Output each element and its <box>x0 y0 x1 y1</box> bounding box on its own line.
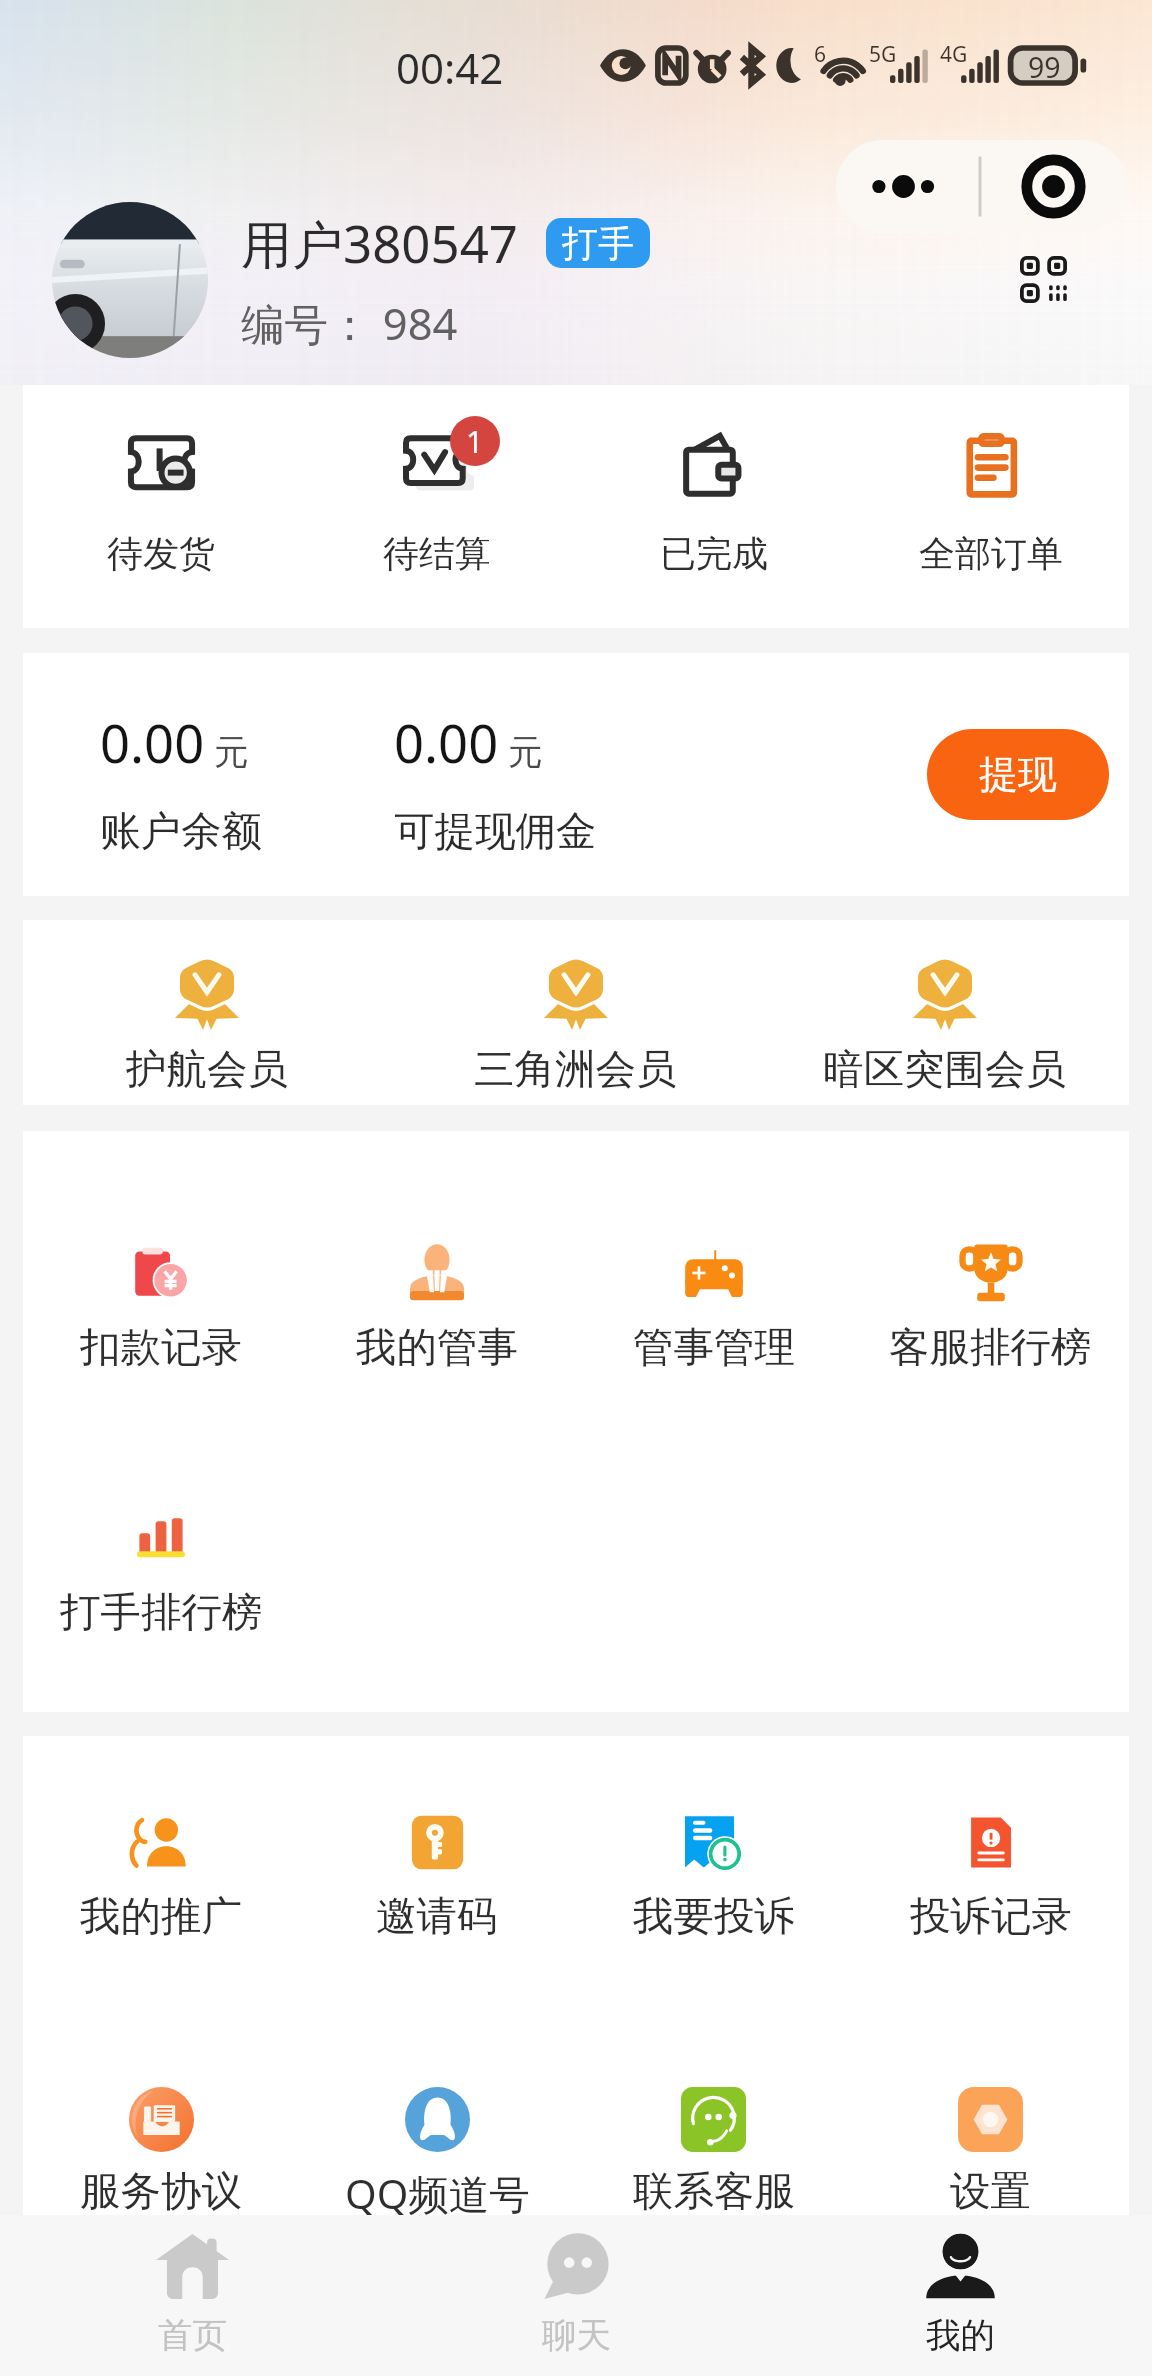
button[interactable]: 全部订单 <box>852 432 1129 576</box>
staticText: 元 <box>508 731 543 774</box>
staticText: 管事管理 <box>633 1322 795 1373</box>
button[interactable]: 打手排行榜 <box>23 1508 299 1638</box>
staticText: 0.00 <box>394 707 499 779</box>
staticText: 用户380547 <box>241 208 519 278</box>
staticText: 首页 <box>158 2314 227 2357</box>
button[interactable]: QQ频道号 <box>299 2087 575 2215</box>
staticText: 聊天 <box>542 2314 611 2357</box>
button[interactable]: 已完成 <box>575 432 852 576</box>
button[interactable]: 投诉记录 <box>852 1814 1129 1942</box>
staticText: 我要投诉 <box>633 1891 795 1942</box>
staticText: 提现 <box>979 750 1057 799</box>
button[interactable]: 服务协议 <box>23 2087 299 2215</box>
button[interactable]: 我的推广 <box>23 1814 299 1942</box>
button[interactable]: 我的 <box>768 2215 1152 2376</box>
button[interactable]: Scan QR code <box>1020 256 1067 303</box>
button[interactable]: More options <box>836 140 1127 233</box>
button[interactable]: 设置 <box>852 2087 1129 2215</box>
staticText: 打手排行榜 <box>60 1587 263 1638</box>
button[interactable]: 提现 <box>927 729 1109 820</box>
staticText: 编号： 984 <box>241 293 458 352</box>
staticText: 待结算 <box>383 531 491 576</box>
button[interactable]: 管事管理 <box>575 1243 852 1373</box>
staticText: 0.00 <box>100 707 205 779</box>
staticText: 5G <box>869 40 897 69</box>
button[interactable]: 联系客服 <box>575 2087 852 2215</box>
staticText: 6 <box>814 40 827 69</box>
staticText: 账户余额 <box>100 806 262 857</box>
button[interactable]: 我的管事 <box>299 1243 575 1373</box>
staticText: 元 <box>214 731 249 774</box>
button[interactable]: 我要投诉 <box>575 1814 852 1942</box>
staticText: 服务协议 <box>80 2166 242 2215</box>
staticText: 护航会员 <box>126 1044 288 1095</box>
staticText: 设置 <box>950 2166 1031 2215</box>
staticText: 全部订单 <box>919 531 1063 576</box>
button[interactable]: 邀请码 <box>299 1814 575 1942</box>
button[interactable]: 暗区突围会员 <box>760 958 1129 1095</box>
staticText: 投诉记录 <box>910 1891 1072 1942</box>
staticText: 扣款记录 <box>80 1322 242 1373</box>
staticText: 1 <box>466 421 484 462</box>
staticText: 我的推广 <box>80 1891 242 1942</box>
staticText: 打手 <box>562 221 634 266</box>
button[interactable]: 护航会员 <box>23 958 391 1095</box>
staticText: 暗区突围会员 <box>823 1044 1066 1095</box>
button[interactable]: 打手 <box>546 218 650 268</box>
staticText: 联系客服 <box>633 2166 795 2215</box>
staticText: 我的管事 <box>356 1322 518 1373</box>
button[interactable]: 1 <box>299 432 575 576</box>
staticText: 已完成 <box>660 531 768 576</box>
button[interactable]: 扣款记录 <box>23 1243 299 1373</box>
staticText: 99 <box>1028 48 1061 87</box>
staticText: 客服排行榜 <box>889 1322 1092 1373</box>
staticText: 我的 <box>926 2314 995 2357</box>
staticText: 4G <box>940 40 968 69</box>
staticText: 00:42 <box>396 39 504 96</box>
staticText: 邀请码 <box>376 1891 498 1942</box>
staticText: 三角洲会员 <box>474 1044 677 1095</box>
button[interactable]: 三角洲会员 <box>391 958 760 1095</box>
staticText: QQ频道号 <box>345 2166 530 2215</box>
button[interactable]: 客服排行榜 <box>852 1243 1129 1373</box>
staticText: 可提现佣金 <box>394 806 597 857</box>
button[interactable]: 聊天 <box>384 2215 768 2376</box>
button[interactable]: 首页 <box>0 2215 384 2376</box>
button[interactable]: 待发货 <box>23 432 299 576</box>
staticText: 待发货 <box>107 531 215 576</box>
